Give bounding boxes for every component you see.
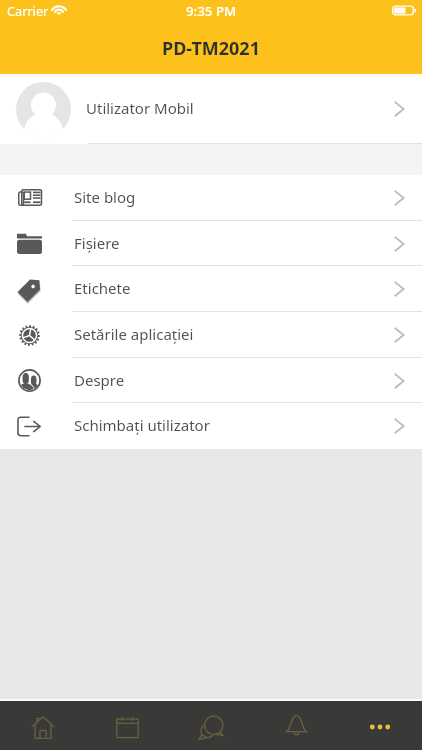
other: Open: [394, 190, 405, 206]
staticText: Schimbați utilizator: [74, 415, 210, 435]
button[interactable]: Etichete: [0, 266, 422, 312]
staticText: Carrier: [7, 2, 49, 19]
button[interactable]: Despre: [0, 358, 422, 403]
staticText: Etichete: [74, 278, 131, 298]
staticText: Site blog: [74, 187, 136, 207]
staticText: Utilizator Mobil: [86, 98, 194, 118]
staticText: PD-TM2021: [162, 36, 260, 61]
button[interactable]: Notifications: [254, 701, 338, 750]
other: Open: [394, 327, 405, 343]
button[interactable]: Home: [0, 701, 85, 750]
button[interactable]: Schimbați utilizator: [0, 403, 422, 449]
other: Open: [394, 418, 405, 434]
staticText: Despre: [74, 370, 125, 390]
other: Open: [394, 101, 405, 117]
button[interactable]: Fișiere: [0, 221, 422, 266]
other: Open: [394, 373, 405, 389]
button[interactable]: Utilizator Mobil: [0, 74, 422, 144]
other: Open: [394, 281, 405, 297]
button[interactable]: Setările aplicației: [0, 312, 422, 358]
button[interactable]: More: [338, 701, 422, 750]
button[interactable]: Calendar: [85, 701, 170, 750]
staticText: Setările aplicației: [74, 324, 194, 344]
staticText: 9:35 PM: [186, 2, 237, 20]
button[interactable]: Messages: [170, 701, 254, 750]
staticText: Fișiere: [74, 233, 120, 253]
other: Open: [394, 236, 405, 252]
button[interactable]: Site blog: [0, 175, 422, 221]
